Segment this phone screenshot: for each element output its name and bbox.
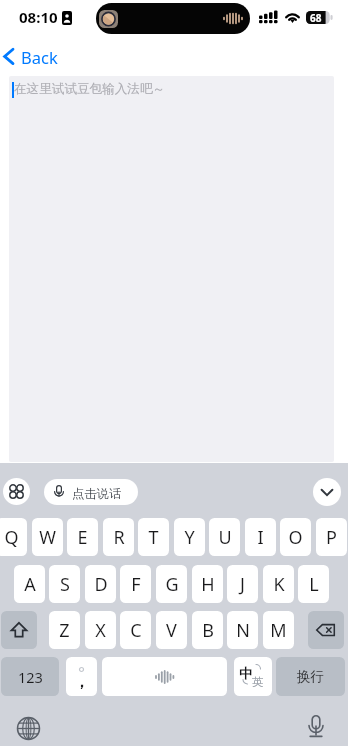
staticText: R: [113, 525, 125, 550]
staticText: T: [148, 525, 159, 550]
staticText: W: [39, 525, 56, 550]
staticText: F: [131, 572, 141, 597]
staticText: 点击说话: [72, 486, 122, 501]
staticText: H: [201, 572, 215, 597]
button[interactable]: Keyboard panels: [3, 478, 30, 505]
button[interactable]: Switch keyboard: [16, 716, 41, 741]
button[interactable]: D: [85, 565, 116, 603]
button[interactable]: X: [85, 611, 116, 649]
staticText: P: [326, 525, 337, 550]
button[interactable]: R: [103, 518, 134, 556]
button[interactable]: Switch Chinese English: [234, 657, 272, 696]
button[interactable]: N: [227, 611, 258, 649]
button[interactable]: P: [316, 518, 347, 556]
button[interactable]: 123: [1, 657, 59, 696]
staticText: 中: [239, 665, 253, 682]
staticText: 08:10: [19, 7, 58, 27]
staticText: U: [218, 525, 232, 550]
button[interactable]: Backspace: [308, 611, 344, 649]
button[interactable]: C: [120, 611, 151, 649]
staticText: J: [240, 572, 245, 597]
staticText: Q: [4, 525, 19, 550]
button[interactable]: U: [209, 518, 240, 556]
staticText: L: [309, 572, 319, 597]
staticText: S: [60, 572, 70, 597]
button[interactable]: S: [49, 565, 80, 603]
staticText: N: [236, 618, 250, 643]
staticText: 68: [310, 11, 322, 24]
button[interactable]: B: [192, 611, 223, 649]
button[interactable]: 点击说话: [44, 479, 138, 505]
staticText: I: [257, 525, 264, 550]
button[interactable]: H: [192, 565, 223, 603]
staticText: K: [273, 572, 285, 597]
staticText: 英: [252, 675, 264, 689]
staticText: O: [288, 525, 303, 550]
button[interactable]: Back: [0, 42, 74, 70]
staticText: V: [166, 618, 177, 643]
button[interactable]: M: [263, 611, 294, 649]
button[interactable]: W: [32, 518, 63, 556]
staticText: A: [24, 572, 36, 597]
button[interactable]: Hide keyboard: [313, 478, 341, 506]
staticText: C: [130, 618, 142, 643]
button[interactable]: Q: [0, 518, 27, 556]
button[interactable]: E: [67, 518, 98, 556]
staticText: Back: [21, 46, 58, 68]
button[interactable]: L: [298, 565, 329, 603]
button[interactable]: T: [138, 518, 169, 556]
staticText: M: [270, 618, 287, 643]
button[interactable]: Space: [102, 657, 227, 696]
staticText: B: [202, 618, 214, 643]
button[interactable]: J: [227, 565, 258, 603]
button[interactable]: 在这里试试豆包输入法吧～: [9, 76, 334, 462]
button[interactable]: Voice input: [304, 714, 328, 740]
staticText: 换行: [297, 668, 324, 685]
button[interactable]: G: [156, 565, 187, 603]
staticText: 在这里试试豆包输入法吧～: [14, 81, 166, 97]
staticText: G: [165, 572, 179, 597]
button[interactable]: F: [120, 565, 151, 603]
button[interactable]: 换行: [276, 657, 345, 696]
button[interactable]: Comma and period: [66, 657, 97, 696]
button[interactable]: I: [245, 518, 276, 556]
button[interactable]: K: [263, 565, 294, 603]
button[interactable]: Y: [174, 518, 205, 556]
button[interactable]: A: [14, 565, 45, 603]
button[interactable]: V: [156, 611, 187, 649]
staticText: X: [95, 618, 106, 643]
staticText: 123: [18, 667, 43, 687]
staticText: ，: [74, 673, 89, 692]
button[interactable]: O: [280, 518, 311, 556]
staticText: E: [77, 525, 88, 550]
staticText: Z: [59, 618, 70, 643]
button[interactable]: Shift: [1, 611, 37, 649]
staticText: Y: [184, 525, 195, 550]
button[interactable]: Z: [49, 611, 80, 649]
staticText: D: [94, 572, 108, 597]
